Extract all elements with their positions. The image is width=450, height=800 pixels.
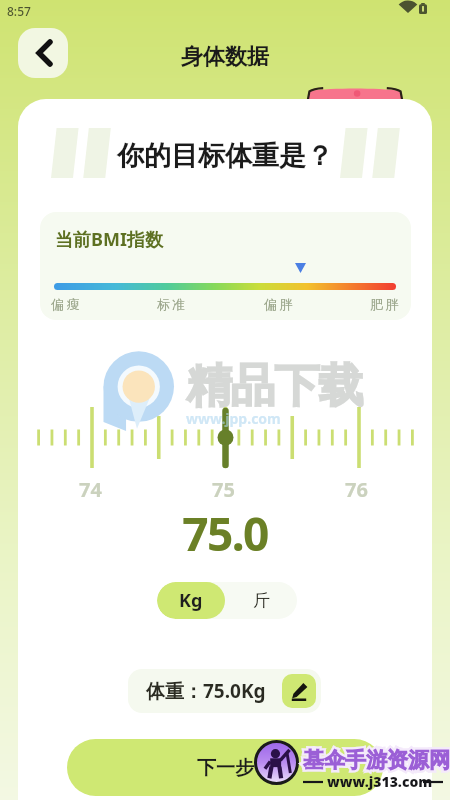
staticText: 偏胖 — [264, 296, 295, 312]
staticText: www.jpp.com — [186, 409, 281, 428]
staticText: 精品下载 — [187, 358, 363, 415]
staticText: Kg — [179, 588, 203, 613]
button[interactable]: 体重：75.0Kg — [128, 669, 321, 713]
staticText: 肥胖 — [370, 296, 401, 312]
staticText: www.j313.com — [327, 772, 433, 791]
staticText: 基伞手游资源网 — [303, 747, 450, 773]
staticText: 75.0 — [18, 502, 432, 565]
button[interactable]: 斤 — [225, 582, 297, 619]
button[interactable]: 下一步 — [67, 739, 383, 796]
staticText: 75 — [212, 476, 235, 503]
staticText: 体重：75.0Kg — [146, 678, 266, 704]
button[interactable]: Back — [18, 28, 68, 78]
staticText: 下一步 — [197, 756, 254, 780]
button[interactable]: Edit weight — [282, 674, 316, 708]
staticText: 标准 — [157, 296, 188, 312]
staticText: 斤 — [253, 590, 270, 611]
button[interactable]: Kg — [157, 582, 225, 619]
staticText: 8:57 — [7, 3, 31, 19]
staticText: 偏瘦 — [51, 296, 82, 312]
staticText: 基伞手游资源网 — [303, 747, 450, 773]
staticText: 76 — [345, 476, 368, 503]
staticText: 你的目标体重是？ — [117, 139, 333, 173]
staticText: 74 — [79, 476, 102, 503]
staticText: 当前BMI指数 — [55, 227, 163, 252]
staticText: 身体数据 — [0, 43, 450, 71]
